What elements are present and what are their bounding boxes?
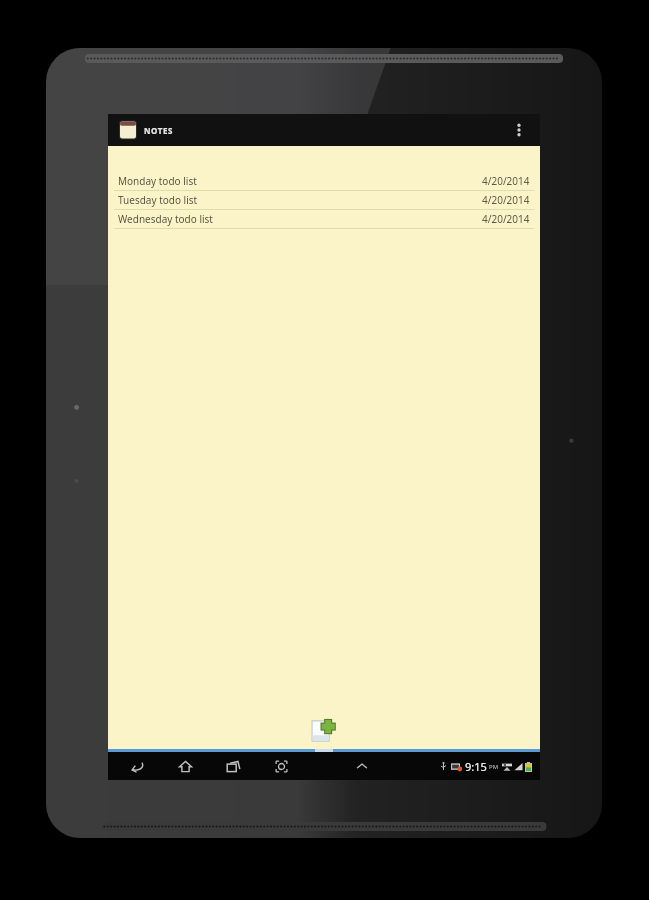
staticText: PM (489, 763, 499, 771)
button[interactable]: Expand (347, 752, 377, 780)
button[interactable]: Add note (307, 714, 341, 748)
staticText: 4/20/2014 (482, 174, 530, 188)
staticText: Wednesday todo list (118, 212, 213, 226)
button[interactable]: Home (170, 752, 200, 780)
button[interactable]: Back (122, 752, 152, 780)
button[interactable]: Monday todo list (108, 172, 540, 191)
staticText: 9:15 (465, 759, 487, 774)
staticText: 4/20/2014 (482, 212, 530, 226)
staticText: NOTES (144, 125, 174, 136)
button[interactable]: Screenshot (266, 752, 296, 780)
button[interactable]: Tuesday todo list (108, 191, 540, 210)
staticText: 4/20/2014 (482, 193, 530, 207)
staticText: Tuesday todo list (118, 193, 198, 207)
button[interactable]: More options (506, 114, 532, 146)
button[interactable]: Recent apps (218, 752, 248, 780)
button[interactable]: Wednesday todo list (108, 210, 540, 229)
staticText: Monday todo list (118, 174, 197, 188)
